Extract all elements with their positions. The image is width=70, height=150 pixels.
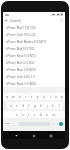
staticText: x <box>22 113 24 117</box>
staticText: xPhone Nova 3 (X-N03) <box>6 82 36 86</box>
staticText: xPhone Mini 4 (X-S04) <box>6 61 35 65</box>
button[interactable]: Back <box>3 17 65 24</box>
button[interactable]: j <box>44 102 50 109</box>
button[interactable]: xPhone Nova 5 (X-N15) <box>3 52 65 59</box>
staticText: p <box>61 95 63 99</box>
staticText: u <box>43 95 45 99</box>
button[interactable]: xPhone Lumi 8 (X-L22) <box>3 31 65 38</box>
button[interactable]: Hide keyboard <box>14 133 19 138</box>
other: Clear <box>60 19 63 22</box>
staticText: d <box>22 104 24 108</box>
button[interactable]: xPhone Maxi 7 (X-M70) <box>3 66 65 73</box>
staticText: xPhone Lumi 6 (X-L11) <box>6 75 36 79</box>
button[interactable]: b <box>38 111 44 118</box>
staticText: o <box>55 95 57 99</box>
staticText: . <box>54 122 55 126</box>
button[interactable]: xPhone Mini 4 (X-S04) <box>3 59 65 66</box>
staticText: xPhone Nova 5 (X-N15) <box>6 54 36 58</box>
button[interactable]: ?123 <box>3 119 11 128</box>
button[interactable]: xPhone Midi 9 (X-T60) <box>3 45 65 52</box>
button[interactable]: s <box>14 102 20 109</box>
staticText: w <box>12 95 15 99</box>
button[interactable]: Home <box>31 133 36 138</box>
staticText: r <box>25 95 27 99</box>
button[interactable]: z <box>13 111 20 118</box>
button[interactable]: o <box>53 93 59 100</box>
staticText: a <box>10 104 12 108</box>
button[interactable]: xPhone Maxi Master 4 (X-M91) <box>3 38 65 45</box>
button[interactable]: v <box>32 111 38 118</box>
staticText: , <box>14 122 15 126</box>
button[interactable]: w <box>10 93 17 100</box>
staticText: y <box>37 95 39 99</box>
staticText: t <box>31 95 33 99</box>
button[interactable]: f <box>26 102 32 109</box>
button[interactable]: Recents <box>48 133 53 138</box>
button[interactable]: Search <box>57 119 65 128</box>
button[interactable]: n <box>44 111 50 118</box>
button[interactable]: p <box>59 93 65 100</box>
staticText: i <box>50 95 51 99</box>
staticText: m <box>52 113 55 117</box>
staticText: xPhone Maxi Master 4 (X-M91) <box>6 40 46 44</box>
button[interactable]: xPhone Midi 10 (X-T70) <box>3 24 65 31</box>
staticText: b <box>40 113 42 117</box>
button[interactable]: c <box>26 111 32 118</box>
button[interactable]: a <box>7 102 14 109</box>
staticText: l <box>59 104 60 108</box>
staticText: Search <box>10 18 22 23</box>
button[interactable]: Comma <box>11 119 17 128</box>
button[interactable]: h <box>38 102 44 109</box>
staticText: h <box>40 104 42 108</box>
button[interactable]: u <box>41 93 47 100</box>
staticText: xPhone Midi 9 (X-T60) <box>6 47 35 51</box>
button[interactable]: k <box>50 102 56 109</box>
button[interactable]: m <box>50 111 56 118</box>
staticText: xPhone Maxi 7 (X-M70) <box>6 68 36 72</box>
staticText: f <box>28 104 30 108</box>
button[interactable]: x <box>20 111 26 118</box>
staticText: q <box>6 95 8 99</box>
staticText: v <box>34 113 36 117</box>
staticText: z <box>16 113 18 117</box>
button[interactable]: l <box>56 102 62 109</box>
staticText: g <box>34 104 36 108</box>
button[interactable]: q <box>3 93 10 100</box>
button[interactable]: i <box>47 93 53 100</box>
staticText: n <box>46 113 48 117</box>
button[interactable]: y <box>35 93 41 100</box>
staticText: k <box>52 104 54 108</box>
button[interactable]: g <box>32 102 38 109</box>
other: Back <box>5 19 8 22</box>
button[interactable]: xPhone Lumi 6 (X-L11) <box>3 73 65 80</box>
staticText: xPhone Lumi 8 (X-L22) <box>6 33 36 37</box>
staticText: ?123 <box>5 122 10 125</box>
button[interactable]: d <box>20 102 26 109</box>
staticText: xPhone Midi 10 (X-T70) <box>6 26 36 30</box>
staticText: e <box>19 95 21 99</box>
staticText: j <box>47 104 48 108</box>
button[interactable]: xPhone Nova 3 (X-N03) <box>3 80 65 87</box>
staticText: s <box>16 104 18 108</box>
button[interactable]: e <box>17 93 23 100</box>
staticText: c <box>28 113 30 117</box>
button[interactable]: r <box>23 93 29 100</box>
button[interactable]: t <box>29 93 35 100</box>
